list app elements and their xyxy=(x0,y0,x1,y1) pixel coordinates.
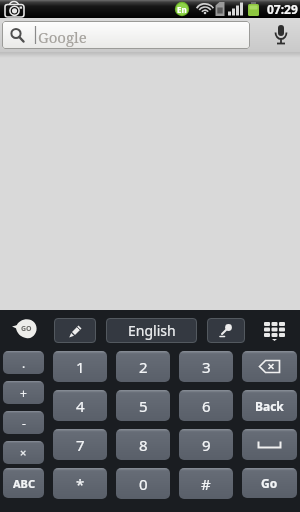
button[interactable]: 5 xyxy=(116,390,170,421)
button[interactable] xyxy=(54,318,96,343)
button[interactable]: × xyxy=(3,441,44,464)
button[interactable]: ABC xyxy=(3,468,44,498)
button[interactable]: Go xyxy=(242,468,297,498)
staticText: 9 xyxy=(202,435,211,455)
button[interactable]: English xyxy=(106,318,197,343)
staticText: Go xyxy=(261,475,278,491)
button[interactable] xyxy=(242,351,297,382)
staticText: GO xyxy=(21,324,32,334)
staticText: Google xyxy=(38,27,87,47)
staticText: 6 xyxy=(202,396,211,416)
staticText: 4 xyxy=(76,396,85,416)
button[interactable]: - xyxy=(3,411,44,434)
button[interactable]: 6 xyxy=(179,390,233,421)
button[interactable]: . xyxy=(3,351,44,374)
staticText: ABC xyxy=(13,476,35,491)
staticText: 3 xyxy=(202,357,211,377)
button[interactable]: 0 xyxy=(116,468,170,499)
staticText: × xyxy=(20,445,27,460)
button[interactable] xyxy=(242,429,297,460)
staticText: * xyxy=(76,474,85,494)
button[interactable]: Google xyxy=(2,21,250,49)
button[interactable]: 8 xyxy=(116,429,170,460)
button[interactable]: 4 xyxy=(53,390,107,421)
staticText: . xyxy=(22,355,26,371)
staticText: 8 xyxy=(139,435,148,455)
staticText: En xyxy=(177,4,187,15)
staticText: - xyxy=(22,415,26,431)
button[interactable]: + xyxy=(3,381,44,404)
staticText: 1 xyxy=(76,357,85,377)
button[interactable]: 7 xyxy=(53,429,107,460)
button[interactable]: GO xyxy=(12,318,40,340)
staticText: 07:29 xyxy=(267,1,298,17)
staticText: + xyxy=(20,385,27,401)
button[interactable]: 2 xyxy=(116,351,170,382)
button[interactable]: 1 xyxy=(53,351,107,382)
staticText: 0 xyxy=(139,474,148,494)
button[interactable]: # xyxy=(179,468,233,499)
button[interactable] xyxy=(262,18,300,52)
staticText: Back xyxy=(255,398,284,414)
button[interactable]: * xyxy=(53,468,107,499)
staticText: 2 xyxy=(139,357,148,377)
staticText: # xyxy=(201,474,211,494)
staticText: English xyxy=(128,321,176,340)
staticText: 7 xyxy=(76,435,85,455)
button[interactable]: 3 xyxy=(179,351,233,382)
button[interactable] xyxy=(207,318,245,343)
staticText: 5 xyxy=(139,396,148,416)
button[interactable] xyxy=(260,319,290,343)
button[interactable]: 9 xyxy=(179,429,233,460)
button[interactable]: Back xyxy=(242,390,297,421)
